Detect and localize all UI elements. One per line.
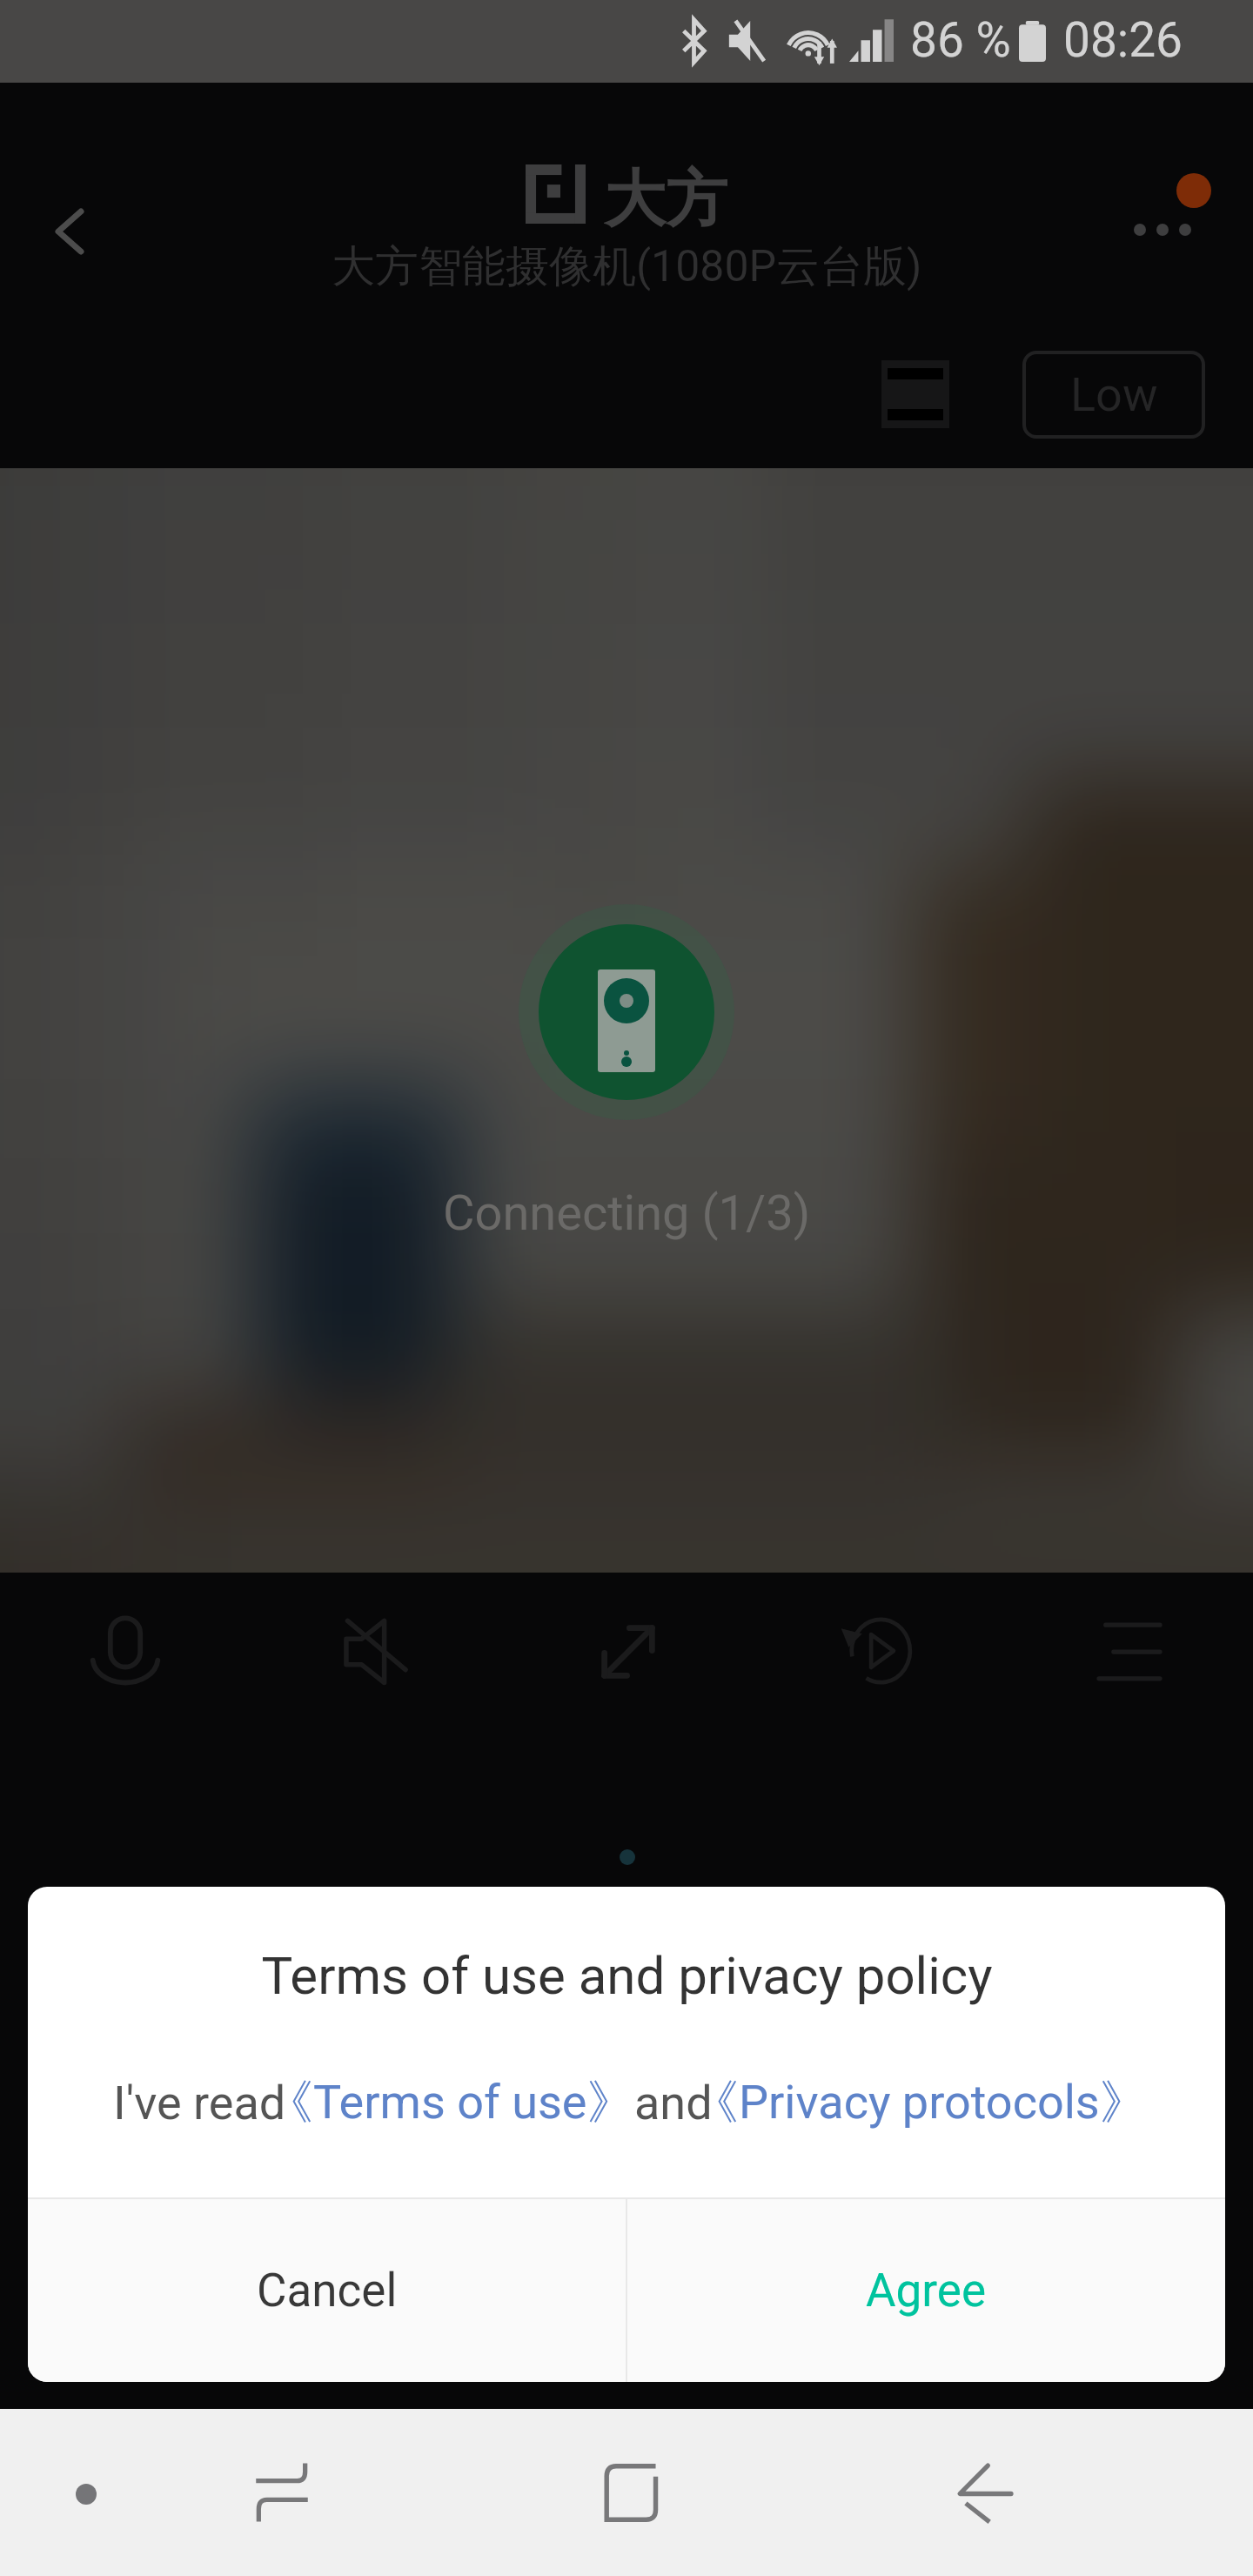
button[interactable]: Recent apps	[197, 2445, 367, 2540]
button[interactable]: Back	[899, 2445, 1069, 2541]
staticText: 大方智能摄像机(1080P云台版)	[332, 239, 922, 294]
button[interactable]: 《Privacy protocols》	[692, 2068, 1147, 2137]
button[interactable]: Microphone	[0, 1573, 251, 1731]
staticText: Low	[1070, 367, 1158, 422]
staticText: Cancel	[257, 2264, 398, 2318]
button[interactable]: More options	[1114, 156, 1236, 269]
button[interactable]: Back	[17, 178, 122, 282]
staticText: 08:26	[1063, 12, 1183, 66]
button[interactable]: Cancel	[28, 2199, 626, 2382]
button[interactable]: Home	[546, 2445, 717, 2540]
staticText: 《Terms of use》	[266, 2073, 634, 2132]
staticText: 《Privacy protocols》	[692, 2073, 1147, 2132]
staticText: and	[634, 2076, 713, 2130]
button[interactable]: Low	[1024, 352, 1203, 437]
button[interactable]: Navigation hint	[23, 2431, 149, 2557]
staticText: 大方	[604, 161, 727, 231]
staticText: Agree	[866, 2264, 987, 2318]
staticText: Terms of use and privacy policy	[261, 1945, 993, 2006]
staticText: Connecting (1/3)	[443, 1184, 811, 1242]
button[interactable]: Agree	[626, 2199, 1225, 2382]
button[interactable]: Playback	[752, 1573, 1002, 1731]
button[interactable]: Snapshot	[863, 342, 968, 446]
button[interactable]: Mute speaker	[251, 1573, 501, 1731]
staticText: I've read	[113, 2076, 286, 2130]
staticText: 86 %	[910, 12, 1011, 66]
button[interactable]: 《Terms of use》	[266, 2068, 634, 2137]
